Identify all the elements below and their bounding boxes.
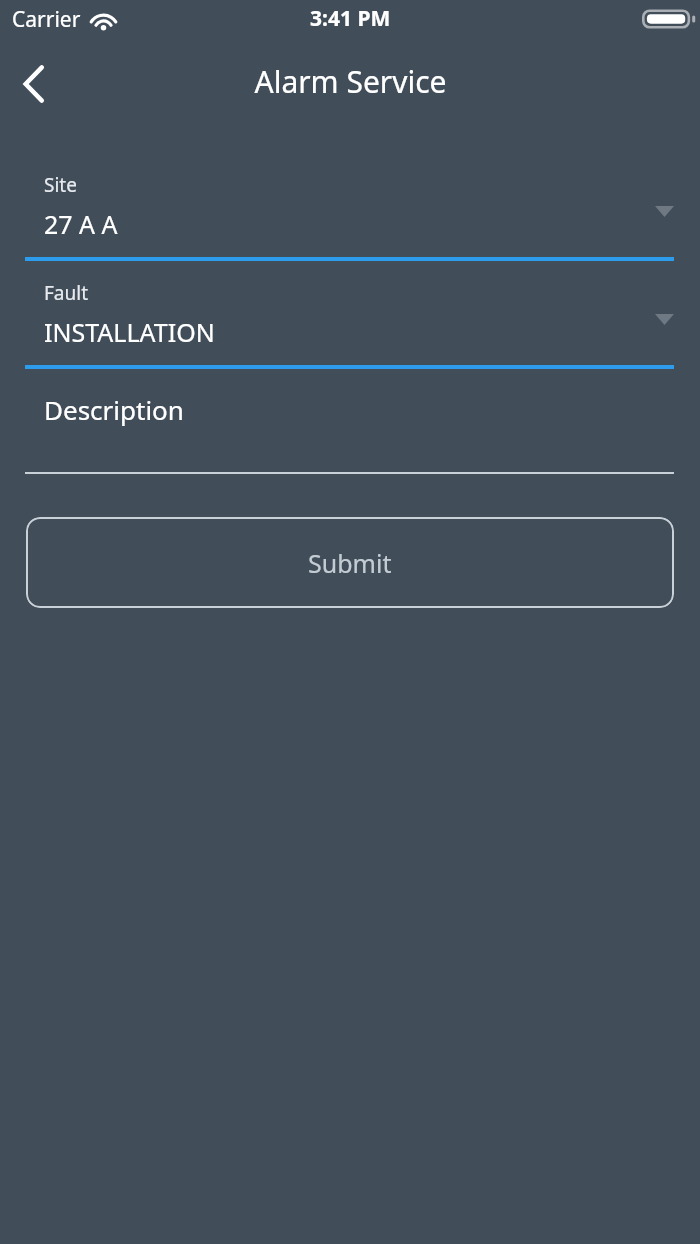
staticText: Submit (308, 546, 392, 580)
staticText: 3:41 PM (310, 4, 391, 33)
button[interactable]: Site (0, 153, 700, 261)
button[interactable]: Description (0, 369, 700, 476)
staticText: Fault (44, 280, 89, 306)
button[interactable]: Submit (26, 517, 674, 608)
staticText: Alarm Service (254, 61, 447, 102)
staticText: 27 A A (44, 207, 118, 241)
staticText: Site (44, 172, 77, 198)
button[interactable]: Back (0, 49, 68, 119)
staticText: INSTALLATION (44, 315, 215, 349)
button[interactable]: Fault (0, 261, 700, 369)
staticText: Description (44, 392, 184, 427)
staticText: Carrier (12, 5, 81, 34)
